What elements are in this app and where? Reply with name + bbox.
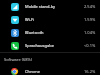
staticText: <0.1% bbox=[84, 43, 96, 48]
staticText: 16.2% bbox=[84, 69, 96, 74]
staticText: Sprachausgabe bbox=[25, 43, 84, 48]
staticText: Software (68%) bbox=[4, 57, 32, 62]
staticText: Chrome bbox=[25, 69, 84, 74]
button[interactable]: Mobile stand-by bbox=[0, 0, 100, 13]
staticText: Mobile stand-by bbox=[25, 4, 84, 9]
button[interactable]: Sprachausgabe bbox=[0, 39, 100, 52]
staticText: Wi-Fi bbox=[25, 17, 84, 22]
button[interactable]: Chrome bbox=[0, 68, 100, 75]
staticText: 1.04% bbox=[84, 30, 96, 35]
button[interactable]: Bluetooth bbox=[0, 26, 100, 39]
staticText: Bluetooth bbox=[25, 30, 84, 35]
staticText: 2.54% bbox=[84, 4, 96, 9]
button[interactable]: Wi-Fi bbox=[0, 13, 100, 26]
staticText: 1.59% bbox=[84, 17, 96, 22]
